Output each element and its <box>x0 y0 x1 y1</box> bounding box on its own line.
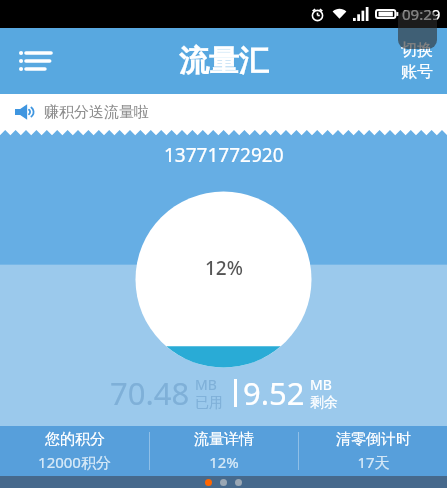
button[interactable]: 清零倒计时 <box>299 426 447 476</box>
staticText: 12% <box>209 452 239 472</box>
staticText: 09:29 <box>402 4 441 24</box>
button[interactable]: 赚积分送流量啦 <box>0 94 447 130</box>
staticText: 12% <box>205 255 243 281</box>
staticText: 赚积分送流量啦 <box>44 103 149 122</box>
staticText: 您的积分 <box>45 430 105 449</box>
staticText: 13771772920 <box>164 142 284 168</box>
button[interactable]: Assistive touch <box>398 10 437 49</box>
button[interactable]: 切换 <box>401 40 433 82</box>
staticText: 流量详情 <box>194 430 254 449</box>
button[interactable]: 流量详情 <box>150 426 298 476</box>
staticText: 切换 <box>401 40 433 60</box>
staticText: MB <box>195 375 217 394</box>
staticText: 清零倒计时 <box>336 430 411 449</box>
staticText: 9.52 <box>243 372 305 414</box>
staticText: 已用 <box>195 394 223 412</box>
staticText: MB <box>310 375 332 394</box>
staticText: 账号 <box>401 62 433 82</box>
staticText: 流量汇 <box>179 42 269 80</box>
staticText: 17天 <box>357 452 390 472</box>
staticText: 剩余 <box>310 394 338 412</box>
button[interactable]: Menu <box>10 35 62 87</box>
staticText: 12000积分 <box>38 452 111 472</box>
staticText: 70.48 <box>110 372 190 414</box>
button[interactable]: 您的积分 <box>0 426 149 476</box>
